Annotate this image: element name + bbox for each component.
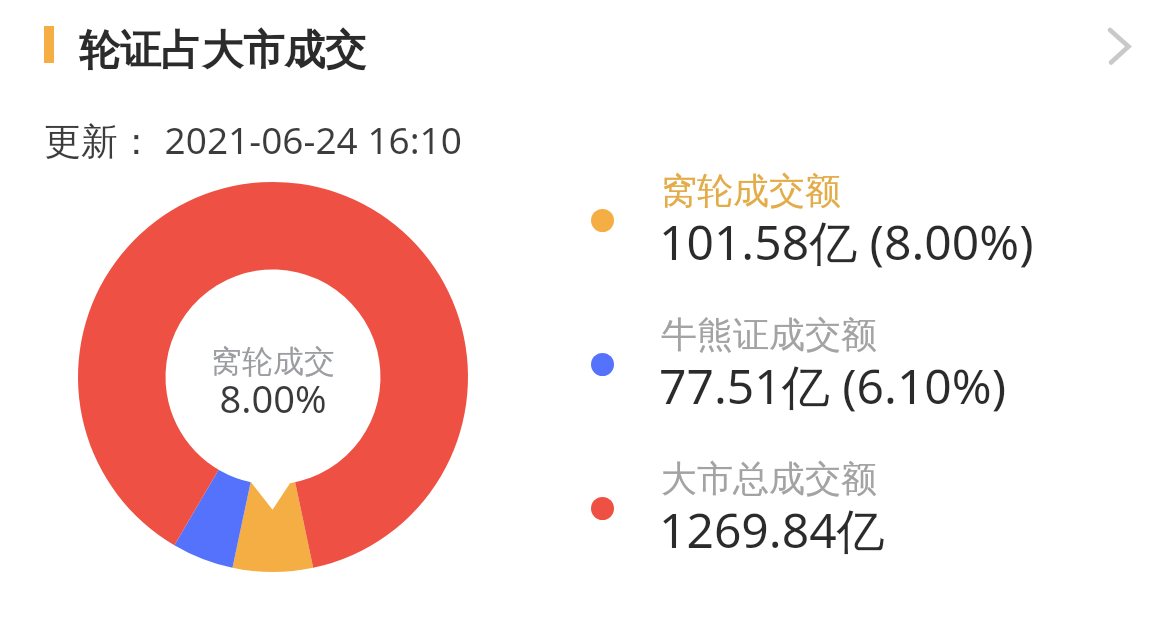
staticText: 更新： 2021-06-24 16:10 bbox=[44, 114, 462, 165]
button[interactable]: Warrant turnover share chart bbox=[78, 182, 468, 572]
button[interactable]: 牛熊证成交额 bbox=[0, 317, 1170, 455]
staticText: 1269.84亿 bbox=[659, 497, 885, 563]
staticText: 窝轮成交额 bbox=[661, 168, 841, 213]
button[interactable]: 窝轮成交额 bbox=[0, 173, 1170, 311]
staticText: 轮证占大市成交 bbox=[79, 25, 366, 77]
staticText: 大市总成交额 bbox=[661, 456, 877, 501]
staticText: 窝轮成交 bbox=[78, 342, 468, 381]
button[interactable]: 大市总成交额 bbox=[0, 461, 1170, 599]
staticText: 牛熊证成交额 bbox=[661, 312, 877, 357]
staticText: 8.00% bbox=[78, 372, 468, 424]
button[interactable]: Open details bbox=[1095, 20, 1145, 70]
staticText: 77.51亿 (6.10%) bbox=[659, 353, 1007, 419]
button[interactable]: 轮证占大市成交 bbox=[0, 0, 1170, 95]
staticText: 101.58亿 (8.00%) bbox=[659, 209, 1034, 275]
